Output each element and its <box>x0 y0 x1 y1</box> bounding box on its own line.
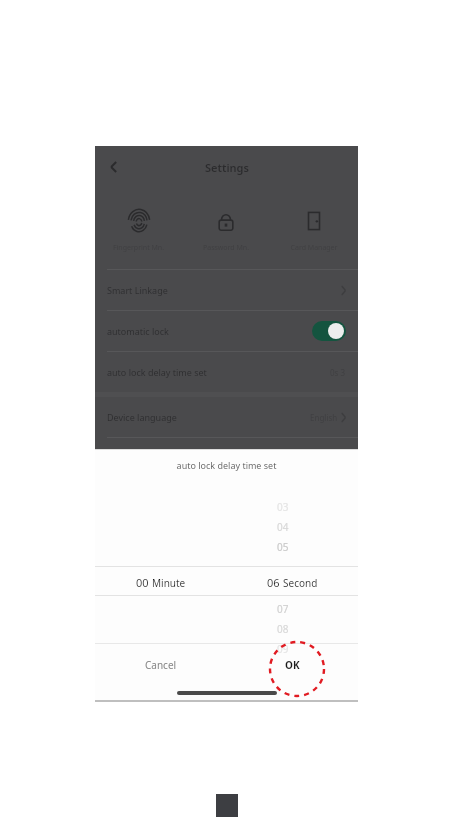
staticText: 09 <box>277 642 289 656</box>
button[interactable]: OK <box>226 644 358 686</box>
button[interactable]: Cancel <box>95 644 226 686</box>
staticText: 03 <box>277 500 289 514</box>
staticText: Device language <box>107 411 177 423</box>
staticText: auto lock delay time set <box>107 366 207 378</box>
staticText: Settings <box>205 160 249 175</box>
button[interactable]: voice volume <box>95 438 358 478</box>
staticText: 05 <box>277 540 289 554</box>
staticText: OK <box>285 658 300 672</box>
staticText: Cancel <box>145 658 177 672</box>
staticText: 06 <box>267 575 280 590</box>
button[interactable]: Back <box>99 152 129 182</box>
button[interactable]: automatic lock <box>95 311 358 351</box>
staticText: Minute <box>152 576 186 590</box>
staticText: automatic lock <box>107 325 169 337</box>
staticText: 07 <box>277 602 289 616</box>
button[interactable]: Card Manager <box>270 206 358 255</box>
button[interactable]: Fingerprint Mn. <box>95 206 182 255</box>
button[interactable]: automatic lock toggle <box>312 321 346 341</box>
staticText: English <box>310 412 338 423</box>
staticText: 08 <box>277 622 289 636</box>
staticText: 00 <box>136 575 149 590</box>
staticText: Second <box>283 576 318 590</box>
staticText <box>292 642 308 656</box>
staticText: 04 <box>277 520 289 534</box>
staticText: Smart Linkage <box>107 284 168 296</box>
button[interactable]: Password Mn. <box>182 206 270 255</box>
staticText: auto lock delay time set <box>95 459 358 471</box>
